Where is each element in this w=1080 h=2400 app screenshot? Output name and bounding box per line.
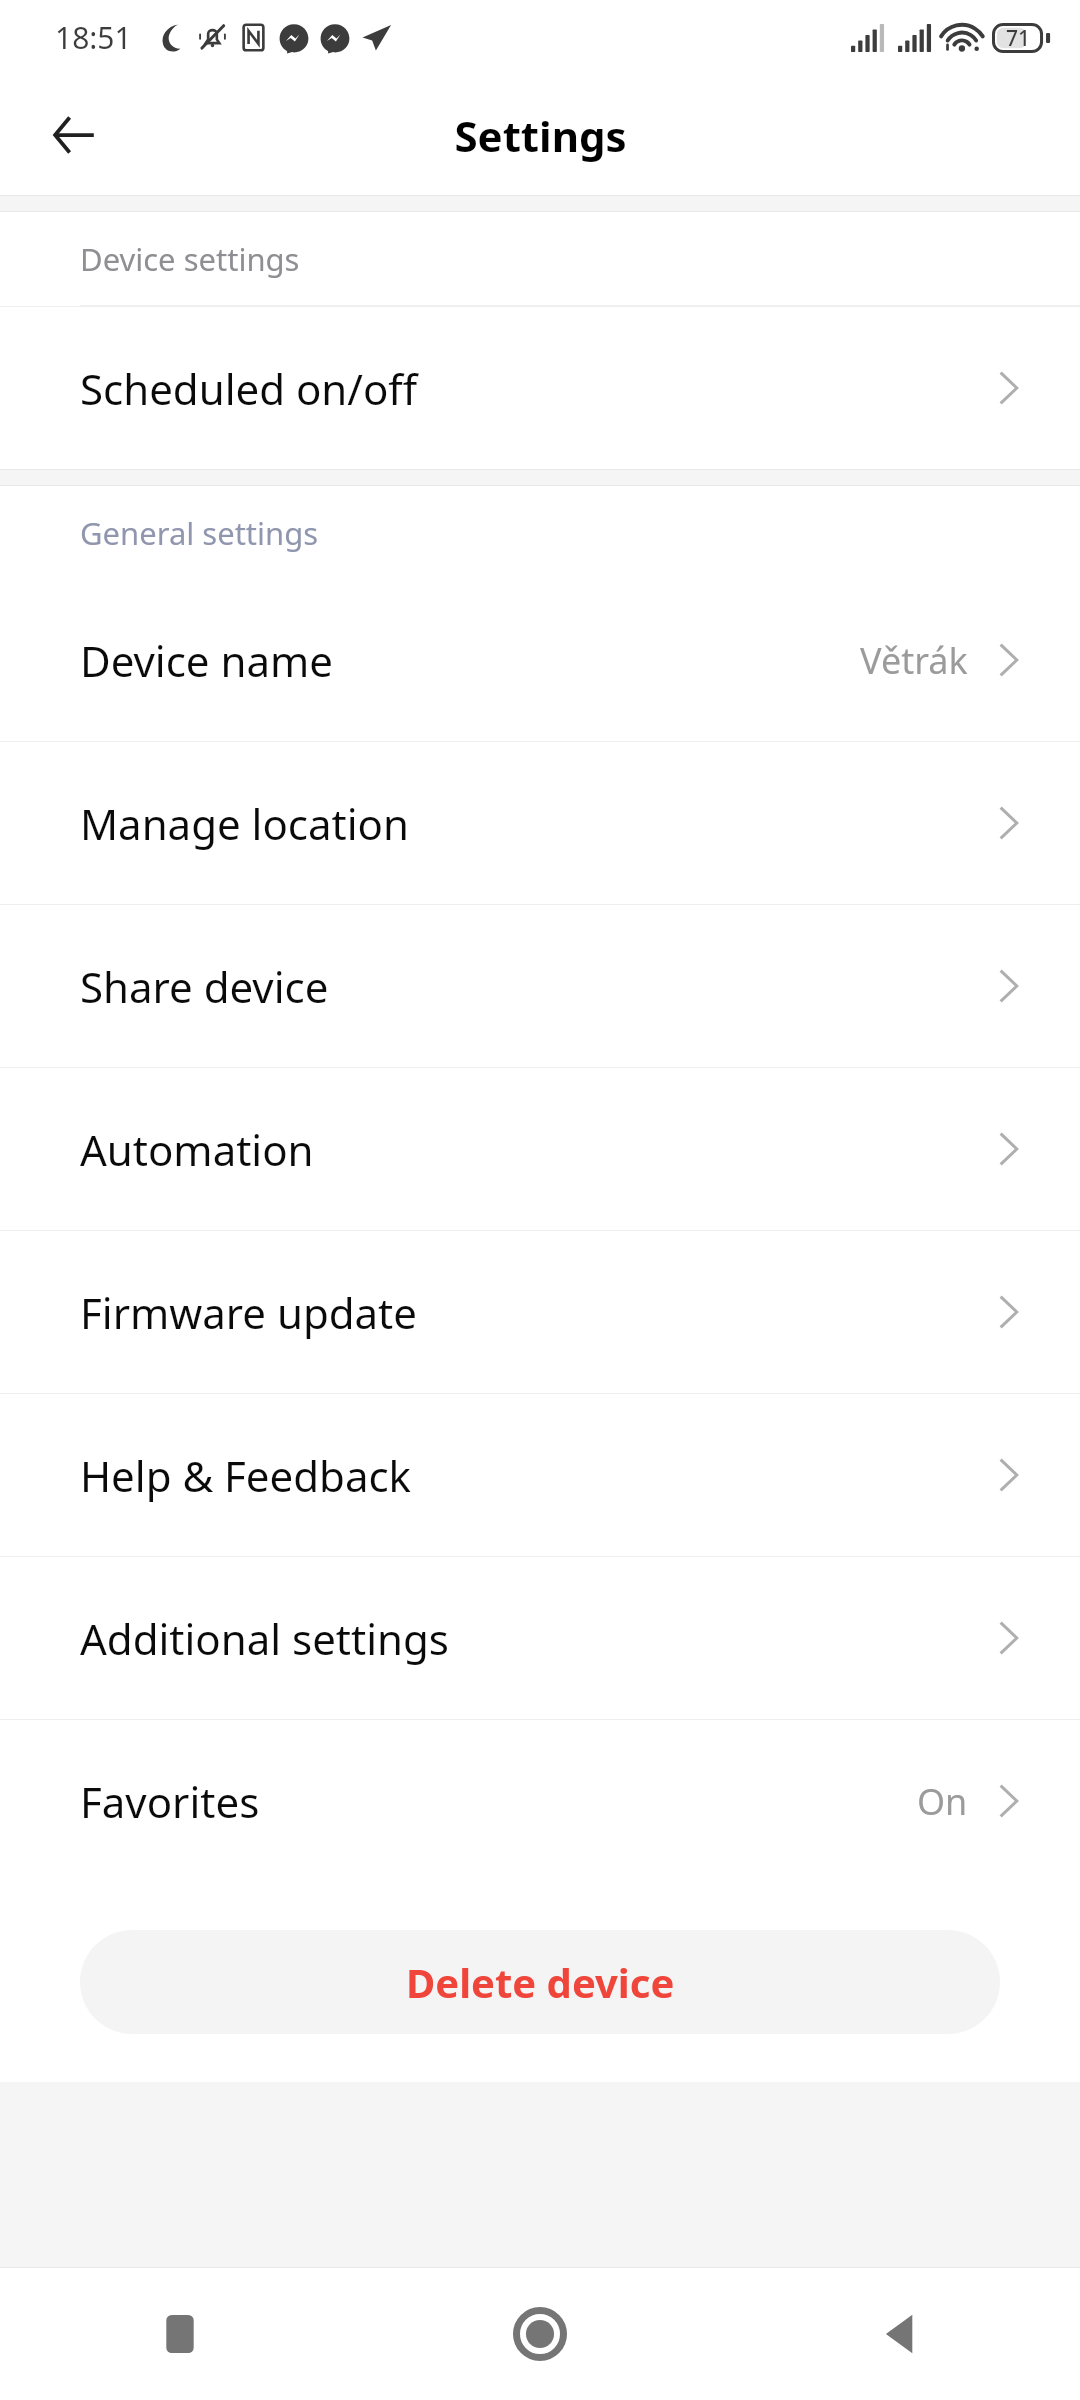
staticText: Share device — [80, 958, 996, 1015]
staticText: Device settings — [80, 238, 300, 280]
button[interactable]: Share device — [0, 905, 1080, 1067]
button[interactable]: Home — [360, 2268, 720, 2400]
button[interactable]: Recent apps — [0, 2268, 360, 2400]
staticText: Firmware update — [80, 1284, 996, 1341]
button[interactable]: Additional settings — [0, 1557, 1080, 1719]
button[interactable]: Help & Feedback — [0, 1394, 1080, 1556]
staticText: Manage location — [80, 795, 996, 852]
button[interactable]: Back — [720, 2268, 1080, 2400]
button[interactable]: Delete device — [80, 1930, 1000, 2034]
staticText: Delete device — [406, 1955, 675, 2009]
staticText: Settings — [454, 107, 627, 164]
staticText: Automation — [80, 1121, 996, 1178]
button[interactable]: Device name — [0, 579, 1080, 741]
button[interactable]: Back — [52, 87, 96, 183]
button[interactable]: Automation — [0, 1068, 1080, 1230]
staticText: On — [917, 1777, 968, 1826]
button[interactable]: Firmware update — [0, 1231, 1080, 1393]
staticText: Help & Feedback — [80, 1447, 996, 1504]
staticText: Scheduled on/off — [80, 360, 996, 417]
staticText: 18:51 — [55, 17, 132, 58]
staticText: Additional settings — [80, 1610, 996, 1667]
staticText: Device name — [80, 632, 860, 689]
button[interactable]: Favorites — [0, 1720, 1080, 1882]
staticText: Větrák — [860, 636, 968, 685]
button[interactable]: Manage location — [0, 742, 1080, 904]
staticText: General settings — [80, 512, 319, 554]
staticText: 71 — [1006, 24, 1031, 53]
button[interactable]: Scheduled on/off — [0, 307, 1080, 469]
staticText: Favorites — [80, 1773, 917, 1830]
